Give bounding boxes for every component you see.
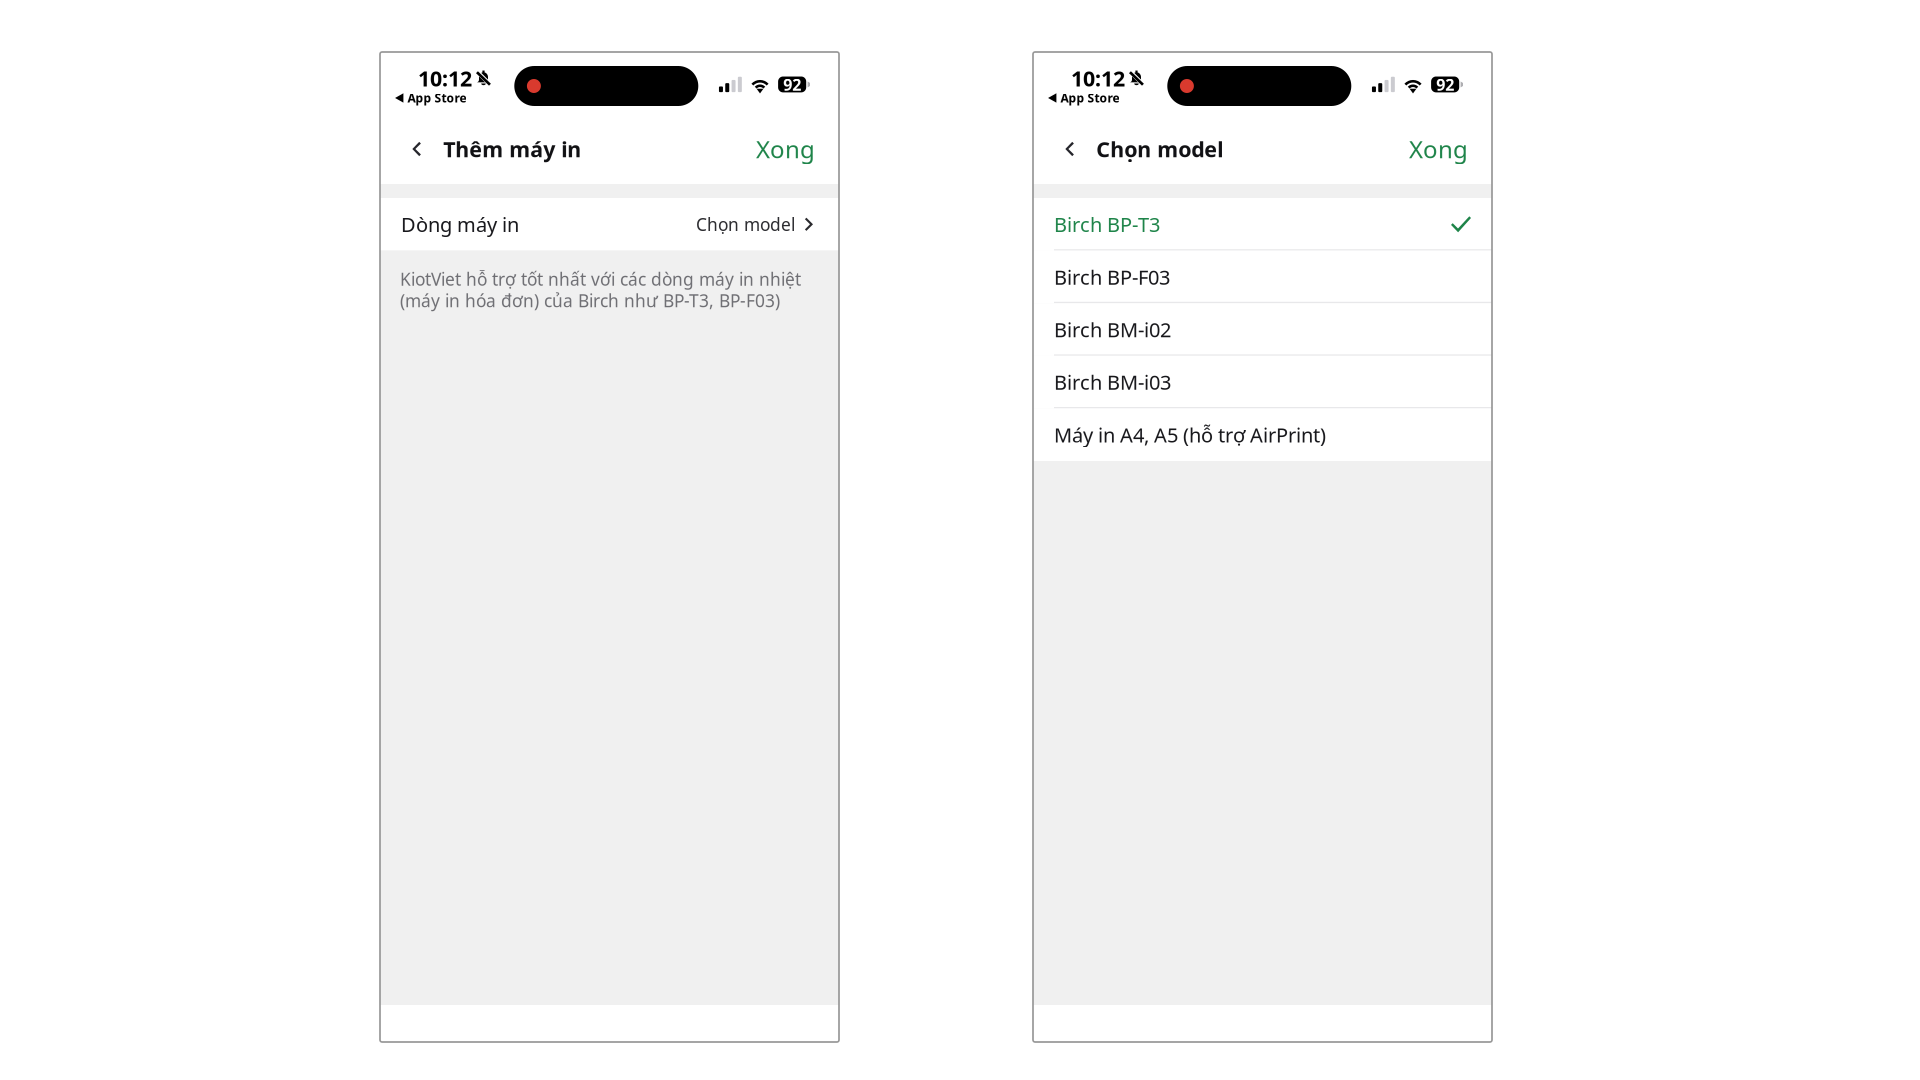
staticText: Xong (1409, 133, 1468, 165)
staticText: Chọn model (696, 213, 795, 236)
staticText: Xong (756, 133, 815, 165)
staticText: App Store (407, 90, 466, 106)
staticText: Chọn model (1096, 135, 1223, 163)
staticText: Thêm máy in (443, 135, 581, 163)
button[interactable]: Xong (1403, 114, 1474, 184)
staticText: Birch BP-F03 (1054, 264, 1170, 290)
staticText: Máy in A4, A5 (hỗ trợ AirPrint) (1054, 421, 1326, 448)
button[interactable]: Back (395, 114, 439, 184)
staticText: KiotViet hỗ trợ tốt nhất với các dòng má… (400, 268, 801, 291)
button[interactable]: Birch BP-T3 (1033, 198, 1492, 251)
button[interactable]: Máy in A4, A5 (hỗ trợ AirPrint) (1033, 408, 1492, 461)
staticText: Birch BM-i03 (1054, 369, 1171, 395)
button[interactable]: Birch BM-i03 (1033, 356, 1492, 408)
staticText: (máy in hóa đơn) của Birch như BP-T3, BP… (400, 289, 780, 312)
staticText: 10:12 (418, 64, 472, 92)
button[interactable]: Xong (750, 114, 821, 184)
button[interactable]: Birch BP-F03 (1033, 251, 1492, 303)
staticText: 10:12 (1071, 64, 1125, 92)
staticText: App Store (1060, 90, 1119, 106)
staticText: 92 (783, 74, 801, 95)
button[interactable]: Birch BM-i02 (1033, 303, 1492, 356)
staticText: Birch BM-i02 (1054, 316, 1171, 343)
staticText: Birch BP-T3 (1054, 211, 1160, 238)
staticText: Dòng máy in (401, 211, 519, 238)
button[interactable]: Back (1048, 114, 1092, 184)
staticText: 92 (1436, 74, 1454, 95)
button[interactable]: Dòng máy in (380, 198, 839, 251)
